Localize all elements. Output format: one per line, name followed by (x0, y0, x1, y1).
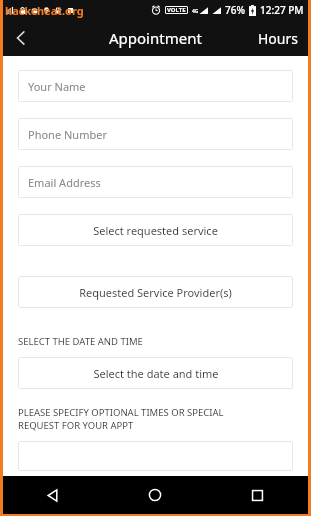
button[interactable]: Back (3, 20, 39, 56)
staticText: Your Name (28, 79, 86, 94)
button[interactable]: Back (3, 476, 104, 514)
staticText: Select requested service (93, 223, 218, 238)
button[interactable]: Hours (248, 20, 308, 56)
button[interactable]: Select requested service (18, 214, 293, 246)
staticText: 4G (192, 8, 199, 15)
staticText: Appointment (109, 28, 202, 48)
staticText: SELECT THE DATE AND TIME (18, 335, 143, 348)
button[interactable]: Requested Service Provider(s) (18, 276, 293, 308)
button[interactable]: Home (104, 476, 206, 514)
staticText: Email Address (28, 175, 101, 190)
staticText: Hours (258, 29, 298, 48)
staticText: VOLTE (167, 6, 186, 14)
staticText: PLEASE SPECIFY OPTIONAL TIMES OR SPECIAL… (18, 406, 224, 432)
button[interactable]: Recent apps (206, 476, 308, 514)
staticText: 12:27 PM (260, 3, 304, 17)
staticText: hackcheat.org (5, 3, 84, 18)
button[interactable]: Phone Number (18, 118, 293, 150)
staticText: Select the date and time (93, 366, 219, 381)
button[interactable]: Select the date and time (18, 357, 293, 389)
button[interactable]: Email Address (18, 166, 293, 198)
staticText: Phone Number (28, 127, 107, 142)
staticText: 76% (225, 3, 245, 17)
button[interactable]: Your Name (18, 70, 293, 102)
button[interactable] (18, 441, 293, 471)
staticText: Requested Service Provider(s) (79, 285, 232, 300)
